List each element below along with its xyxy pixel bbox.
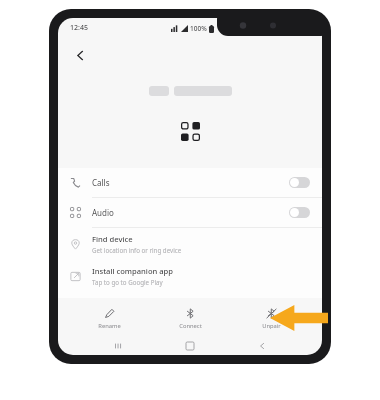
button[interactable]: Back bbox=[251, 337, 273, 355]
button[interactable]: Audio bbox=[58, 198, 322, 227]
button[interactable]: Rename bbox=[79, 308, 139, 330]
button[interactable]: Calls bbox=[58, 168, 322, 197]
staticText: Audio bbox=[92, 207, 114, 218]
staticText: Find device bbox=[92, 234, 133, 244]
staticText: Tap to go to Google Play bbox=[92, 278, 163, 286]
button[interactable]: Audio switch bbox=[289, 207, 310, 218]
staticText: Unpair bbox=[262, 322, 281, 330]
button[interactable]: Install companion app bbox=[58, 260, 322, 292]
staticText: Rename bbox=[98, 322, 121, 330]
staticText: Connect bbox=[179, 322, 202, 330]
button[interactable]: Unpair bbox=[241, 308, 301, 330]
staticText: 12:45 bbox=[70, 23, 88, 33]
staticText: Install companion app bbox=[92, 266, 174, 276]
button[interactable]: Back bbox=[68, 43, 92, 67]
button[interactable]: Calls switch bbox=[289, 177, 310, 188]
button[interactable]: Connect bbox=[160, 308, 220, 330]
staticText: Get location info or ring device bbox=[92, 246, 182, 254]
button[interactable]: Find device bbox=[58, 228, 322, 260]
button[interactable]: Recents bbox=[108, 337, 130, 355]
button[interactable]: Home bbox=[179, 337, 201, 355]
staticText: Calls bbox=[92, 177, 110, 188]
staticText: 100% bbox=[190, 24, 207, 33]
